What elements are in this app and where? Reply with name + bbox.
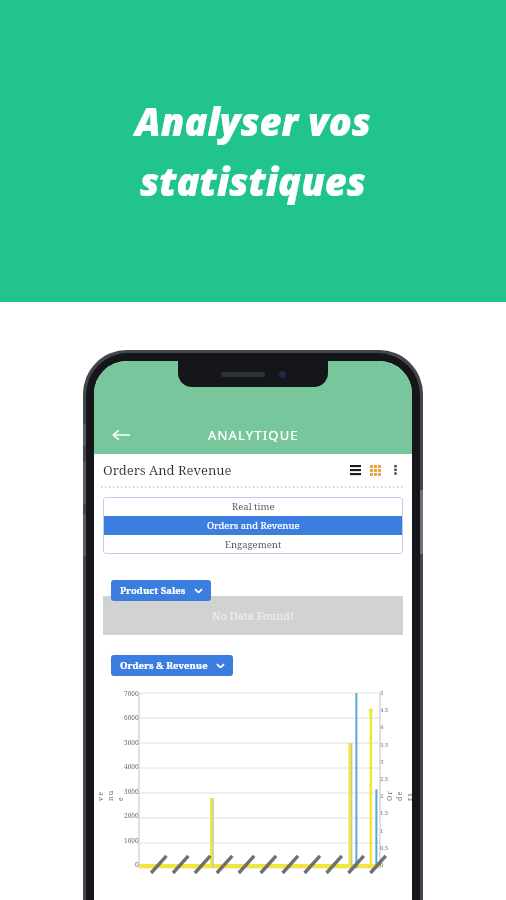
staticText: 7000 [124, 689, 139, 698]
button[interactable]: Grid view [367, 462, 383, 478]
staticText: 2000 [124, 811, 139, 820]
button[interactable]: Real time [103, 497, 403, 516]
button[interactable]: List view [347, 462, 363, 478]
staticText: Product Sales [120, 584, 186, 597]
staticText: Orders & Revenue [120, 659, 208, 672]
button[interactable]: Engagement [103, 535, 403, 554]
staticText: ANALYTIQUE [208, 426, 299, 444]
staticText: 3000 [124, 787, 139, 796]
staticText: 5000 [124, 738, 139, 747]
staticText: Real time [232, 500, 275, 513]
staticText: 2 [380, 792, 384, 800]
staticText: 6000 [124, 713, 139, 722]
button[interactable]: More options [387, 462, 403, 478]
staticText: 3 [380, 758, 384, 766]
staticText: Revenue [94, 787, 126, 801]
staticText: 0 [135, 860, 139, 869]
staticText: 0.5 [380, 844, 389, 852]
staticText: Orders and Revenue [207, 519, 300, 532]
staticText: 3.5 [380, 741, 389, 749]
staticText: 4 [380, 723, 384, 731]
staticText: 1 [380, 827, 384, 835]
staticText: Engagement [225, 538, 282, 551]
staticText: Orders [385, 787, 412, 801]
staticText: 5 [380, 689, 384, 697]
staticText: 2.5 [380, 775, 389, 783]
staticText: 1.5 [380, 809, 389, 817]
staticText: 4000 [124, 762, 139, 771]
button[interactable]: Back [106, 420, 136, 450]
staticText: 0 [380, 861, 384, 869]
staticText: 4.5 [380, 706, 389, 714]
staticText: statistiques [140, 155, 366, 207]
button[interactable]: Orders & Revenue [111, 655, 233, 676]
button[interactable]: Product Sales [111, 580, 211, 601]
staticText: Orders And Revenue [103, 461, 232, 479]
staticText: 1000 [124, 836, 139, 845]
staticText: No Data Found! [212, 608, 294, 623]
button[interactable]: Orders and Revenue [103, 516, 403, 535]
staticText: Analyser vos [135, 95, 371, 147]
